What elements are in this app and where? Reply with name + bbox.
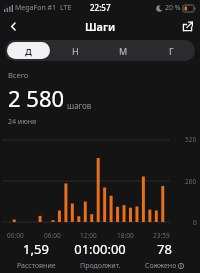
staticText: Сожжено bbox=[145, 261, 177, 271]
staticText: 22:57 bbox=[90, 2, 111, 13]
staticText: 18:00 bbox=[117, 231, 134, 240]
button[interactable]: Back bbox=[0, 15, 26, 37]
staticText: Всего bbox=[8, 70, 29, 80]
staticText: Г bbox=[169, 45, 174, 57]
staticText: 24 июня bbox=[8, 117, 37, 127]
staticText: 23:59 bbox=[153, 231, 170, 240]
staticText: 06:00 bbox=[44, 231, 61, 240]
staticText: 0 bbox=[193, 218, 197, 227]
staticText: MegaFon #1 bbox=[15, 3, 57, 13]
button[interactable]: Д bbox=[7, 42, 50, 59]
staticText: Н bbox=[72, 45, 79, 57]
staticText: 78 bbox=[157, 240, 172, 258]
staticText: Продолжит. bbox=[80, 261, 121, 271]
staticText: 520 bbox=[185, 135, 197, 144]
staticText: 260 bbox=[185, 177, 197, 186]
staticText: Расстояние bbox=[17, 261, 56, 271]
staticText: 12:00 bbox=[80, 231, 97, 240]
button[interactable]: 78 bbox=[132, 240, 196, 271]
staticText: Шаги bbox=[85, 19, 116, 34]
staticText: Д bbox=[25, 45, 32, 57]
staticText: LTE bbox=[60, 3, 72, 13]
staticText: 1,59 bbox=[23, 240, 49, 258]
staticText: 00:00 bbox=[7, 231, 24, 240]
staticText: М bbox=[119, 45, 128, 57]
staticText: шагов bbox=[67, 100, 92, 111]
button[interactable]: 01:00:00 bbox=[68, 240, 132, 271]
staticText: 20 % bbox=[165, 3, 181, 13]
button[interactable]: 1,59 bbox=[4, 240, 68, 271]
staticText: 01:00:00 bbox=[74, 240, 126, 258]
button[interactable]: Н bbox=[54, 42, 97, 59]
staticText: 2 580 bbox=[8, 83, 65, 113]
button[interactable]: Share bbox=[174, 15, 200, 37]
button[interactable]: Г bbox=[149, 42, 193, 59]
button[interactable]: М bbox=[101, 42, 145, 59]
